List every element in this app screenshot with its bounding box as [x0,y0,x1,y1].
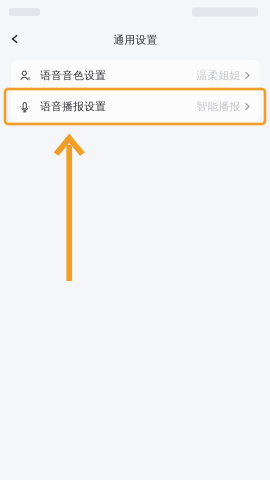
button[interactable]: 返回 [1,27,29,53]
button[interactable]: 语音播报设置 [11,91,260,122]
staticText: 语音播报设置 [40,100,106,113]
staticText: 语音音色设置 [40,69,106,82]
button[interactable]: 语音音色设置 [11,60,260,91]
staticText: 温柔姐姐 [197,69,241,82]
staticText: 通用设置 [113,33,157,46]
staticText: 智能播报 [197,100,241,113]
